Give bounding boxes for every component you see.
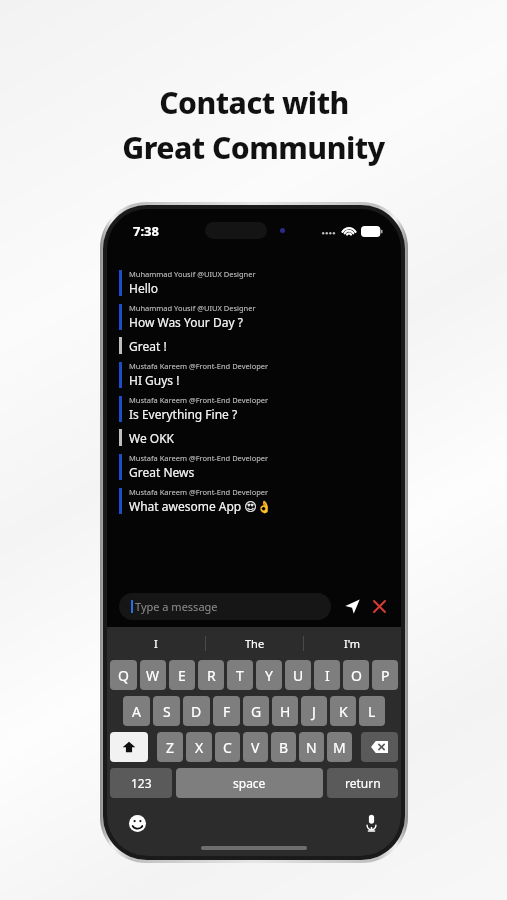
button[interactable]: W (140, 660, 166, 690)
staticText: I (154, 636, 158, 651)
staticText: D (191, 702, 202, 721)
staticText: The (245, 636, 265, 651)
button[interactable]: X (186, 732, 212, 762)
button[interactable]: Emoji (125, 811, 149, 835)
staticText: X (195, 738, 204, 757)
staticText: V (251, 738, 260, 757)
staticText: How Was Your Day ? (129, 314, 243, 330)
staticText: Mustafa Kareem @Front-End Developer (129, 395, 269, 405)
staticText: S (163, 702, 171, 721)
button[interactable]: R (198, 660, 224, 690)
button[interactable]: S (153, 696, 180, 726)
button[interactable]: Muhammad Yousif @UIUX Designer (119, 269, 389, 296)
staticText: Q (118, 666, 129, 685)
staticText: P (381, 666, 390, 685)
button[interactable]: Dictation (359, 811, 383, 835)
staticText: Hello (129, 280, 159, 296)
staticText: Mustafa Kareem @Front-End Developer (129, 361, 269, 371)
staticText: T (236, 666, 244, 685)
staticText: O (351, 666, 362, 685)
button[interactable]: We OKK (119, 429, 389, 446)
staticText: H (280, 702, 291, 721)
button[interactable]: Backspace (361, 732, 398, 762)
staticText: Contact with (159, 82, 349, 123)
button[interactable]: H (272, 696, 298, 726)
button[interactable]: Great ! (119, 337, 389, 354)
staticText: Z (166, 738, 175, 757)
staticText: I'm (344, 636, 361, 651)
button[interactable]: The (206, 627, 303, 660)
staticText: K (339, 702, 348, 721)
staticText: C (223, 738, 232, 757)
staticText: R (207, 666, 216, 685)
staticText: E (178, 666, 186, 685)
button[interactable]: D (183, 696, 210, 726)
button[interactable]: A (123, 696, 150, 726)
button[interactable]: Z (157, 732, 183, 762)
button[interactable]: Shift (110, 732, 148, 762)
button[interactable]: K (330, 696, 356, 726)
button[interactable]: Q (110, 660, 137, 690)
button[interactable]: G (243, 696, 269, 726)
button[interactable]: Close (369, 596, 389, 616)
staticText: G (251, 702, 262, 721)
button[interactable]: Send (341, 595, 363, 617)
button[interactable]: U (285, 660, 311, 690)
staticText: Great ! (129, 338, 167, 354)
staticText: 123 (131, 775, 152, 791)
staticText: A (132, 702, 141, 721)
staticText: Mustafa Kareem @Front-End Developer (129, 487, 269, 497)
button[interactable]: Mustafa Kareem @Front-End Developer (119, 487, 389, 514)
staticText: We OKK (129, 430, 175, 446)
button[interactable]: B (271, 732, 296, 762)
button[interactable]: V (243, 732, 268, 762)
staticText: J (312, 702, 316, 721)
staticText: space (233, 775, 266, 791)
button[interactable]: L (359, 696, 385, 726)
button[interactable]: 123 (110, 768, 172, 798)
button[interactable]: Y (256, 660, 282, 690)
button[interactable]: C (215, 732, 240, 762)
staticText: Great News (129, 464, 195, 480)
button[interactable]: Type a message (119, 593, 331, 620)
button[interactable]: I (107, 627, 205, 660)
button[interactable]: Muhammad Yousif @UIUX Designer (119, 303, 389, 330)
staticText: Muhammad Yousif @UIUX Designer (129, 269, 256, 279)
button[interactable]: Mustafa Kareem @Front-End Developer (119, 361, 389, 388)
staticText: B (279, 738, 289, 757)
staticText: N (306, 738, 317, 757)
button[interactable]: J (301, 696, 327, 726)
button[interactable]: I'm (304, 627, 401, 660)
button[interactable]: N (299, 732, 324, 762)
button[interactable]: T (227, 660, 253, 690)
button[interactable]: Mustafa Kareem @Front-End Developer (119, 395, 389, 422)
staticText: I (325, 666, 330, 685)
staticText: Y (265, 666, 273, 685)
staticText: M (333, 738, 346, 757)
button[interactable]: F (213, 696, 240, 726)
staticText: W (146, 666, 160, 685)
staticText: L (368, 702, 376, 721)
staticText: Mustafa Kareem @Front-End Developer (129, 453, 269, 463)
button[interactable]: E (169, 660, 195, 690)
button[interactable]: I (314, 660, 340, 690)
staticText: Type a message (135, 599, 218, 614)
staticText: What awesome App 😍👌 (129, 498, 272, 514)
staticText: Great Community (122, 127, 385, 168)
button[interactable]: M (327, 732, 352, 762)
staticText: Is Everything Fine ? (129, 406, 238, 422)
staticText: U (293, 666, 304, 685)
staticText: Muhammad Yousif @UIUX Designer (129, 303, 256, 313)
button[interactable]: return (327, 768, 398, 798)
button[interactable]: space (176, 768, 323, 798)
button[interactable]: O (343, 660, 369, 690)
staticText: 7:38 (133, 222, 159, 240)
staticText: HI Guys ! (129, 372, 180, 388)
button[interactable]: P (372, 660, 398, 690)
staticText: F (223, 702, 231, 721)
button[interactable]: Mustafa Kareem @Front-End Developer (119, 453, 389, 480)
staticText: return (345, 775, 381, 791)
